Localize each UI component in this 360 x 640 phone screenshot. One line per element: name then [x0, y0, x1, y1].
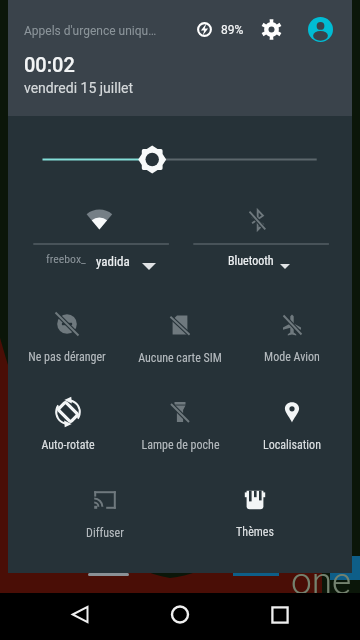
- staticText: Bluetooth: [228, 254, 274, 268]
- button[interactable]: User profile: [308, 17, 333, 42]
- staticText: Appels d'urgence uniqu…: [24, 24, 157, 38]
- button[interactable]: Ne pas déranger: [11, 300, 123, 364]
- button[interactable]: Thèmes: [199, 476, 311, 540]
- button[interactable]: Diffuser: [49, 476, 161, 540]
- button[interactable]: Brightness: [8, 136, 352, 184]
- staticText: 89%: [221, 23, 244, 37]
- button[interactable]: Aucune carte SIM: [124, 301, 236, 365]
- button[interactable]: Lampe de poche: [124, 388, 236, 452]
- button[interactable]: Bluetooth off: [191, 196, 331, 280]
- button[interactable]: Back: [56, 591, 104, 638]
- staticText: Mode Avion: [264, 350, 320, 364]
- staticText: Ne pas déranger: [28, 350, 106, 364]
- staticText: Thèmes: [236, 525, 274, 539]
- button[interactable]: Wi-Fi freebox_yadida: [31, 196, 171, 280]
- staticText: Aucune carte SIM: [138, 351, 222, 365]
- button[interactable]: Localisation: [236, 388, 348, 452]
- button[interactable]: Settings: [261, 19, 282, 40]
- button[interactable]: Home: [156, 591, 204, 638]
- staticText: yadida: [96, 254, 130, 269]
- button[interactable]: Battery charging, 89 percent: [197, 22, 212, 37]
- staticText: Diffuser: [86, 526, 124, 540]
- button[interactable]: Mode Avion: [236, 301, 348, 365]
- staticText: Auto-rotate: [41, 438, 95, 452]
- staticText: Localisation: [263, 438, 321, 452]
- staticText: Lampe de poche: [141, 438, 220, 452]
- button[interactable]: Auto-rotate: [12, 388, 124, 452]
- staticText: freebox_: [46, 252, 86, 266]
- button[interactable]: Recent apps: [256, 591, 304, 638]
- staticText: vendredi 15 juillet: [24, 80, 134, 96]
- staticText: one: [291, 560, 352, 603]
- staticText: 00:02: [24, 53, 75, 76]
